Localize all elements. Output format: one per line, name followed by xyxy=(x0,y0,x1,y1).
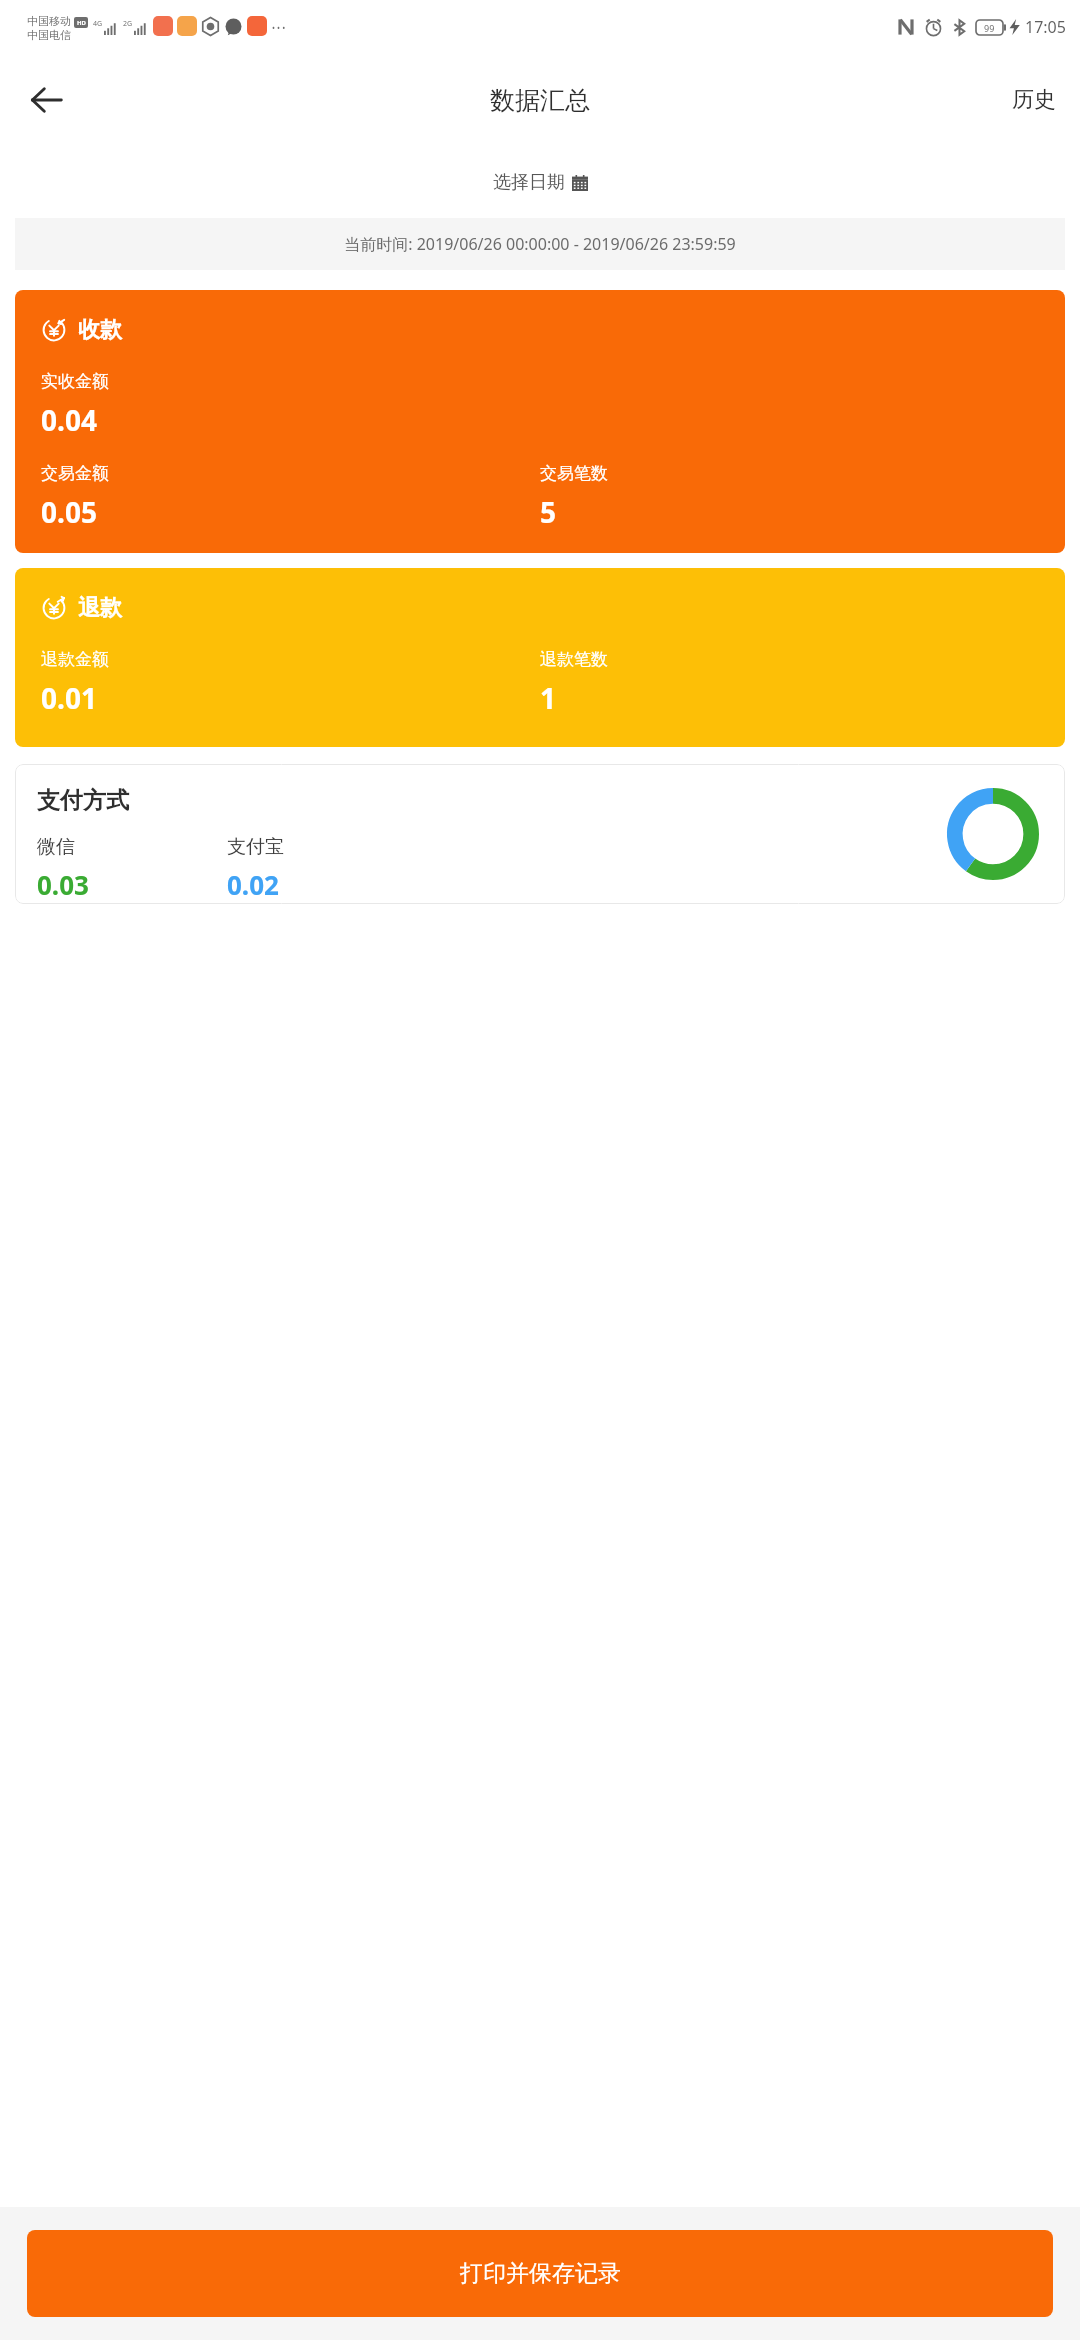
staticText: 退款 xyxy=(78,594,122,622)
button[interactable]: 选择日期 xyxy=(481,163,600,202)
button[interactable]: 支付方式 xyxy=(15,764,1065,904)
staticText: 2G xyxy=(123,19,133,29)
staticText: • • • xyxy=(272,22,286,33)
staticText: 交易金额 xyxy=(41,463,109,484)
staticText: 1 xyxy=(540,679,557,717)
staticText: 数据汇总 xyxy=(490,85,590,116)
staticText: 选择日期 xyxy=(493,171,565,194)
staticText: 交易笔数 xyxy=(540,463,608,484)
staticText: 17:05 xyxy=(1025,16,1066,38)
staticText: 99 xyxy=(984,22,995,34)
staticText: 当前时间: 2019/06/26 00:00:00 - 2019/06/26 2… xyxy=(344,233,736,255)
button[interactable]: 历史 xyxy=(998,76,1070,124)
staticText: 历史 xyxy=(1012,86,1056,114)
staticText: 支付宝 xyxy=(227,835,284,859)
staticText: 4G xyxy=(93,19,103,29)
staticText: 退款笔数 xyxy=(540,649,608,670)
staticText: HD xyxy=(77,19,86,27)
staticText: 退款金额 xyxy=(41,649,109,670)
button[interactable]: 退款 xyxy=(15,568,1065,747)
staticText: 5 xyxy=(540,493,557,531)
staticText: 支付方式 xyxy=(37,786,129,815)
button[interactable]: 收款 xyxy=(15,290,1065,553)
staticText: 微信 xyxy=(37,835,75,859)
staticText: 中国电信 xyxy=(27,28,71,42)
staticText: 0.01 xyxy=(41,679,97,717)
staticText: 中国移动 xyxy=(27,14,71,28)
button[interactable]: 打印并保存记录 xyxy=(27,2230,1053,2317)
staticText: 0.02 xyxy=(227,867,279,902)
staticText: 实收金额 xyxy=(41,371,109,392)
staticText: 收款 xyxy=(78,316,122,344)
staticText: 0.03 xyxy=(37,867,89,902)
staticText: 0.05 xyxy=(41,493,97,531)
button[interactable]: Back xyxy=(16,70,76,130)
staticText: 0.04 xyxy=(41,401,97,439)
staticText: 打印并保存记录 xyxy=(460,2259,621,2288)
